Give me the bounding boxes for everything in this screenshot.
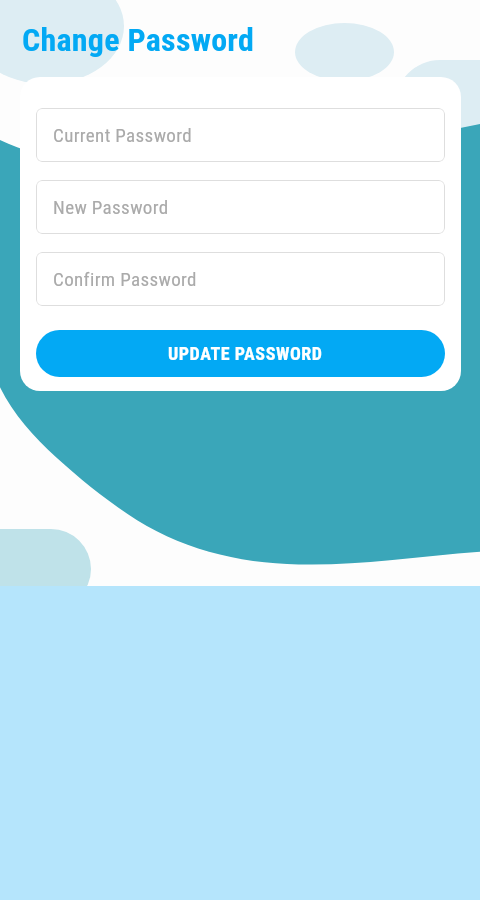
staticText: Change Password bbox=[22, 21, 255, 59]
button[interactable]: New Password bbox=[36, 180, 445, 234]
button[interactable]: Confirm Password bbox=[36, 252, 445, 306]
staticText: New Password bbox=[53, 196, 169, 218]
staticText: UPDATE PASSWORD bbox=[168, 343, 323, 364]
button[interactable]: UPDATE PASSWORD bbox=[36, 330, 445, 377]
staticText: Current Password bbox=[53, 124, 192, 146]
button[interactable]: Current Password bbox=[36, 108, 445, 162]
staticText: Confirm Password bbox=[53, 268, 197, 290]
